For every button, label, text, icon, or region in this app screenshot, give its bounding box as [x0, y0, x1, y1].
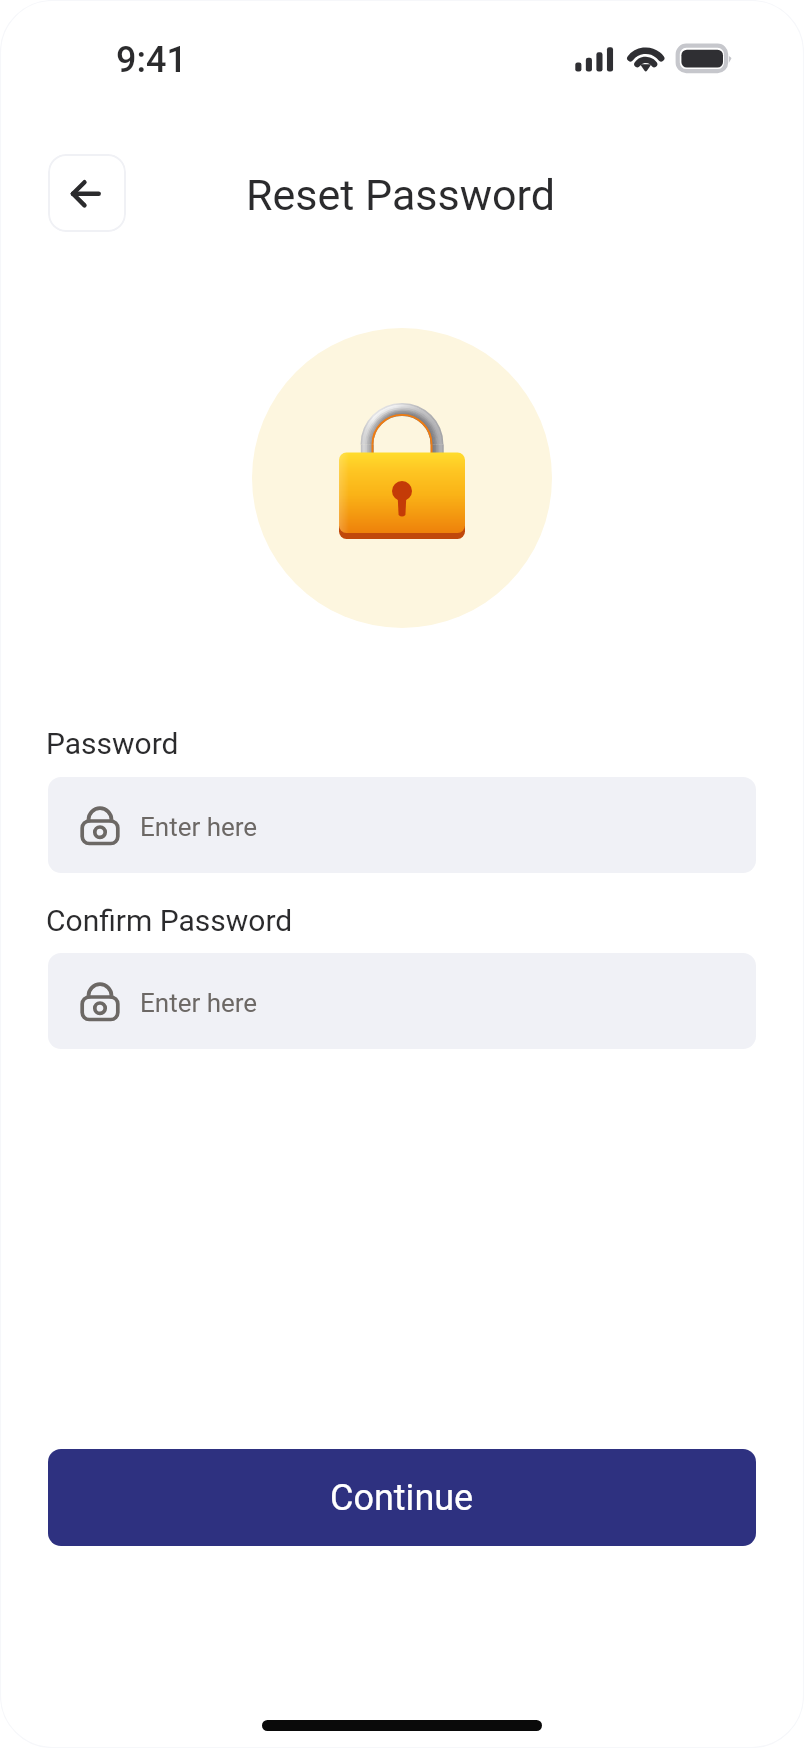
staticText: Continue [330, 1477, 474, 1519]
button[interactable]: Back [48, 154, 126, 232]
button[interactable]: Continue [48, 1449, 756, 1546]
staticText: Reset Password [246, 170, 555, 220]
staticText: 9:41 [116, 39, 187, 81]
button[interactable]: Confirm Password [48, 953, 756, 1049]
staticText: Confirm Password [46, 903, 293, 938]
staticText: Enter here [140, 812, 258, 842]
staticText: Password [46, 726, 179, 761]
staticText: Enter here [140, 988, 258, 1018]
button[interactable]: Password [48, 777, 756, 873]
